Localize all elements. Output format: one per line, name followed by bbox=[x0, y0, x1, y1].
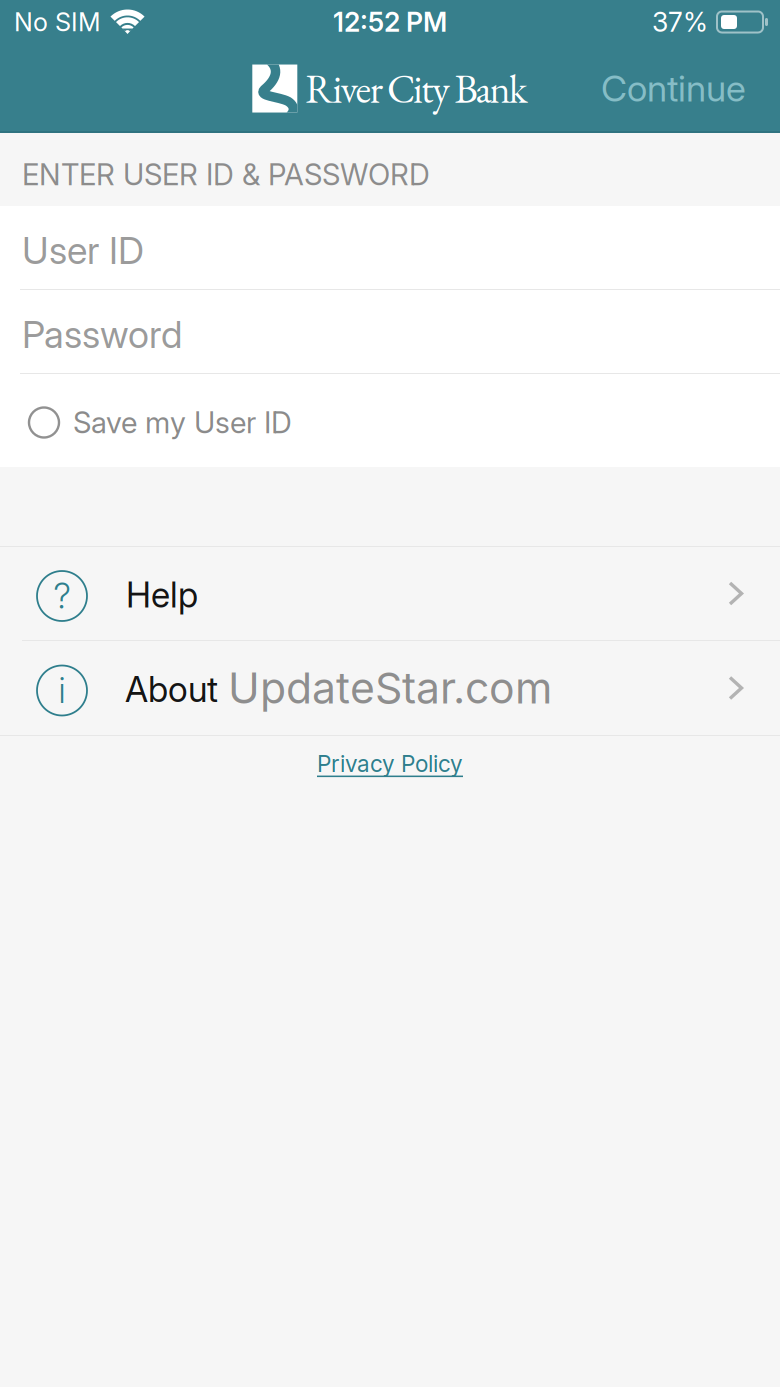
button[interactable]: i bbox=[0, 641, 780, 735]
button[interactable]: ? bbox=[0, 547, 780, 640]
staticText: Password bbox=[22, 312, 182, 357]
staticText: 12:52 PM bbox=[333, 6, 447, 38]
staticText: UpdateStar.com bbox=[228, 662, 552, 714]
staticText: 37% bbox=[652, 6, 708, 38]
staticText: ENTER USER ID & PASSWORD bbox=[22, 157, 430, 192]
staticText: ? bbox=[53, 575, 70, 617]
staticText: Save my User ID bbox=[73, 405, 292, 440]
staticText: No SIM bbox=[14, 7, 101, 37]
staticText: Help bbox=[126, 574, 198, 616]
staticText: i bbox=[58, 669, 65, 711]
button[interactable]: Privacy Policy bbox=[309, 742, 471, 785]
staticText: User ID bbox=[22, 228, 144, 273]
button[interactable]: Continue bbox=[583, 57, 764, 120]
button[interactable]: Save my User ID bbox=[0, 374, 780, 467]
staticText: Continue bbox=[601, 67, 746, 110]
staticText: River City Bank bbox=[305, 62, 528, 115]
staticText: Privacy Policy bbox=[317, 750, 463, 777]
staticText: About bbox=[125, 668, 218, 710]
